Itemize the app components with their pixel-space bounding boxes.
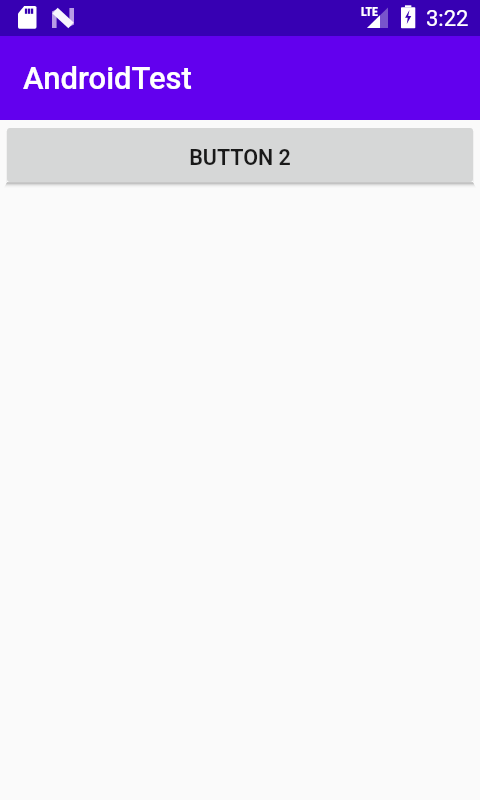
- staticText: 3:22: [426, 6, 469, 32]
- staticText: LTE: [361, 5, 378, 19]
- staticText: BUTTON 2: [189, 145, 291, 170]
- button[interactable]: BUTTON 2: [7, 128, 473, 182]
- staticText: AndroidTest: [23, 60, 192, 96]
